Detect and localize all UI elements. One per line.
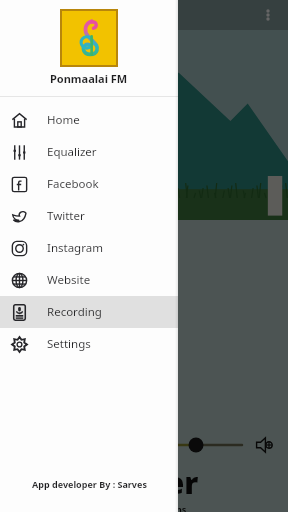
button[interactable]: Volume (252, 432, 278, 458)
button[interactable]: Settings (0, 328, 178, 360)
staticText: WhatsApp : 9094 6259 (14, 236, 129, 251)
staticText: Instagram (47, 240, 103, 256)
button[interactable] (12, 433, 242, 457)
staticText: Printer (89, 462, 199, 503)
staticText: Recording (47, 304, 102, 320)
button[interactable]: Home (0, 104, 178, 136)
button[interactable]: Instagram (0, 232, 178, 264)
button[interactable]: Twitter (0, 200, 178, 232)
staticText: Equalizer (47, 144, 97, 160)
button[interactable]: Facebook (0, 168, 178, 200)
button[interactable]: Equalizer (0, 136, 178, 168)
staticText: Software Solutions (102, 503, 187, 512)
staticText: Have a very happy day! (14, 256, 134, 271)
staticText: Settings (47, 336, 91, 352)
staticText: Home (47, 112, 80, 128)
staticText: App developer By : Sarves (32, 478, 147, 490)
staticText: Ponmaalai FM (50, 71, 128, 86)
button[interactable]: Website (0, 264, 178, 296)
staticText: Website (47, 272, 91, 288)
staticText: Twitter (47, 208, 85, 224)
button[interactable]: Recording (0, 296, 178, 328)
button[interactable]: More options (254, 1, 282, 29)
staticText: Facebook (47, 176, 99, 192)
